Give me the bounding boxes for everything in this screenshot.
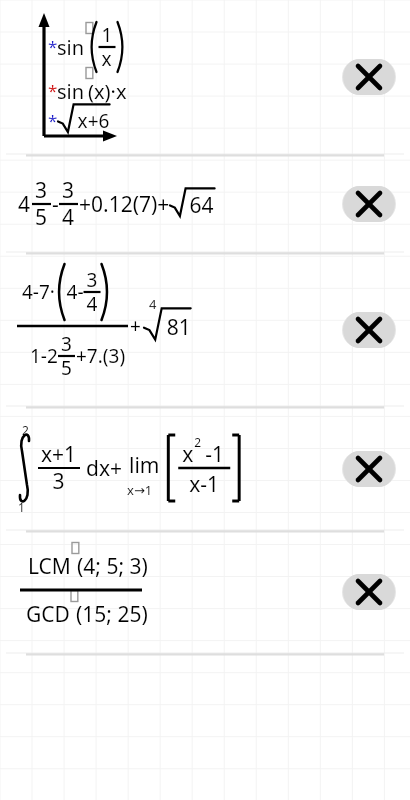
- button[interactable]: Delete entry: [342, 186, 396, 222]
- button[interactable]: Delete entry: [342, 312, 396, 348]
- button[interactable]: [0, 254, 410, 405]
- button[interactable]: [0, 0, 410, 153]
- button[interactable]: [0, 532, 410, 652]
- button[interactable]: Delete entry: [342, 574, 396, 610]
- button[interactable]: [0, 156, 410, 251]
- button[interactable]: [0, 408, 410, 529]
- button[interactable]: Delete entry: [342, 59, 396, 95]
- button[interactable]: Delete entry: [342, 451, 396, 487]
